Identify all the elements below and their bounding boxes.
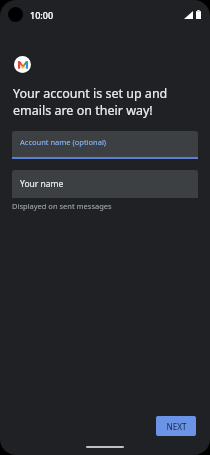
staticText: NEXT [166, 421, 187, 432]
staticText: Your name [20, 178, 64, 190]
staticText: Account name (optional) [20, 137, 107, 147]
staticText: Displayed on sent messages [12, 201, 112, 211]
staticText: Your account is set up and emails are on… [13, 85, 168, 119]
staticText: 10:00 [30, 9, 54, 21]
button[interactable]: Your name [12, 170, 198, 198]
button[interactable]: NEXT [156, 416, 196, 436]
button[interactable]: Account name (optional) [12, 131, 198, 159]
